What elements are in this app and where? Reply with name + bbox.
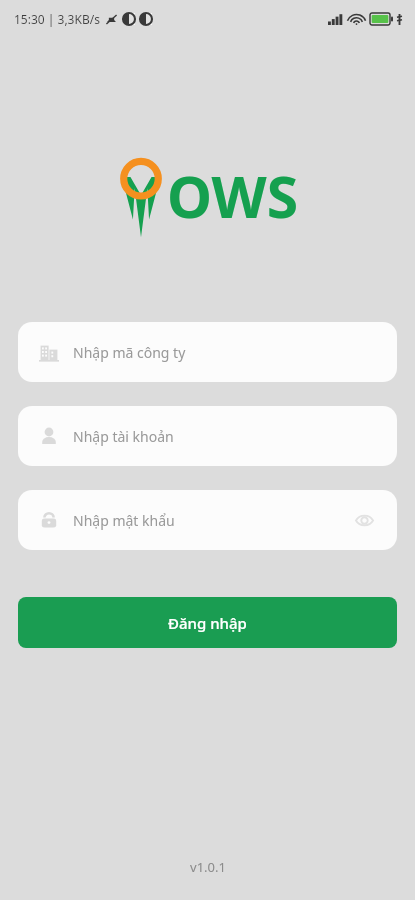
staticText: Nhập mật khẩu bbox=[73, 511, 175, 530]
button[interactable]: Nhập tài khoản bbox=[18, 406, 397, 466]
staticText: Nhập mã công ty bbox=[73, 343, 186, 362]
staticText: 15:30 | 3,3KB/s bbox=[14, 11, 100, 27]
staticText: OWS bbox=[167, 157, 299, 235]
button[interactable]: Hiện mật khẩu bbox=[351, 507, 377, 533]
button[interactable]: Nhập mật khẩu bbox=[18, 490, 397, 550]
button[interactable]: Nhập mã công ty bbox=[18, 322, 397, 382]
staticText: Nhập tài khoản bbox=[73, 427, 174, 446]
staticText: v1.0.1 bbox=[190, 858, 226, 876]
staticText: Đăng nhập bbox=[168, 613, 247, 633]
button[interactable]: Đăng nhập bbox=[18, 597, 397, 648]
